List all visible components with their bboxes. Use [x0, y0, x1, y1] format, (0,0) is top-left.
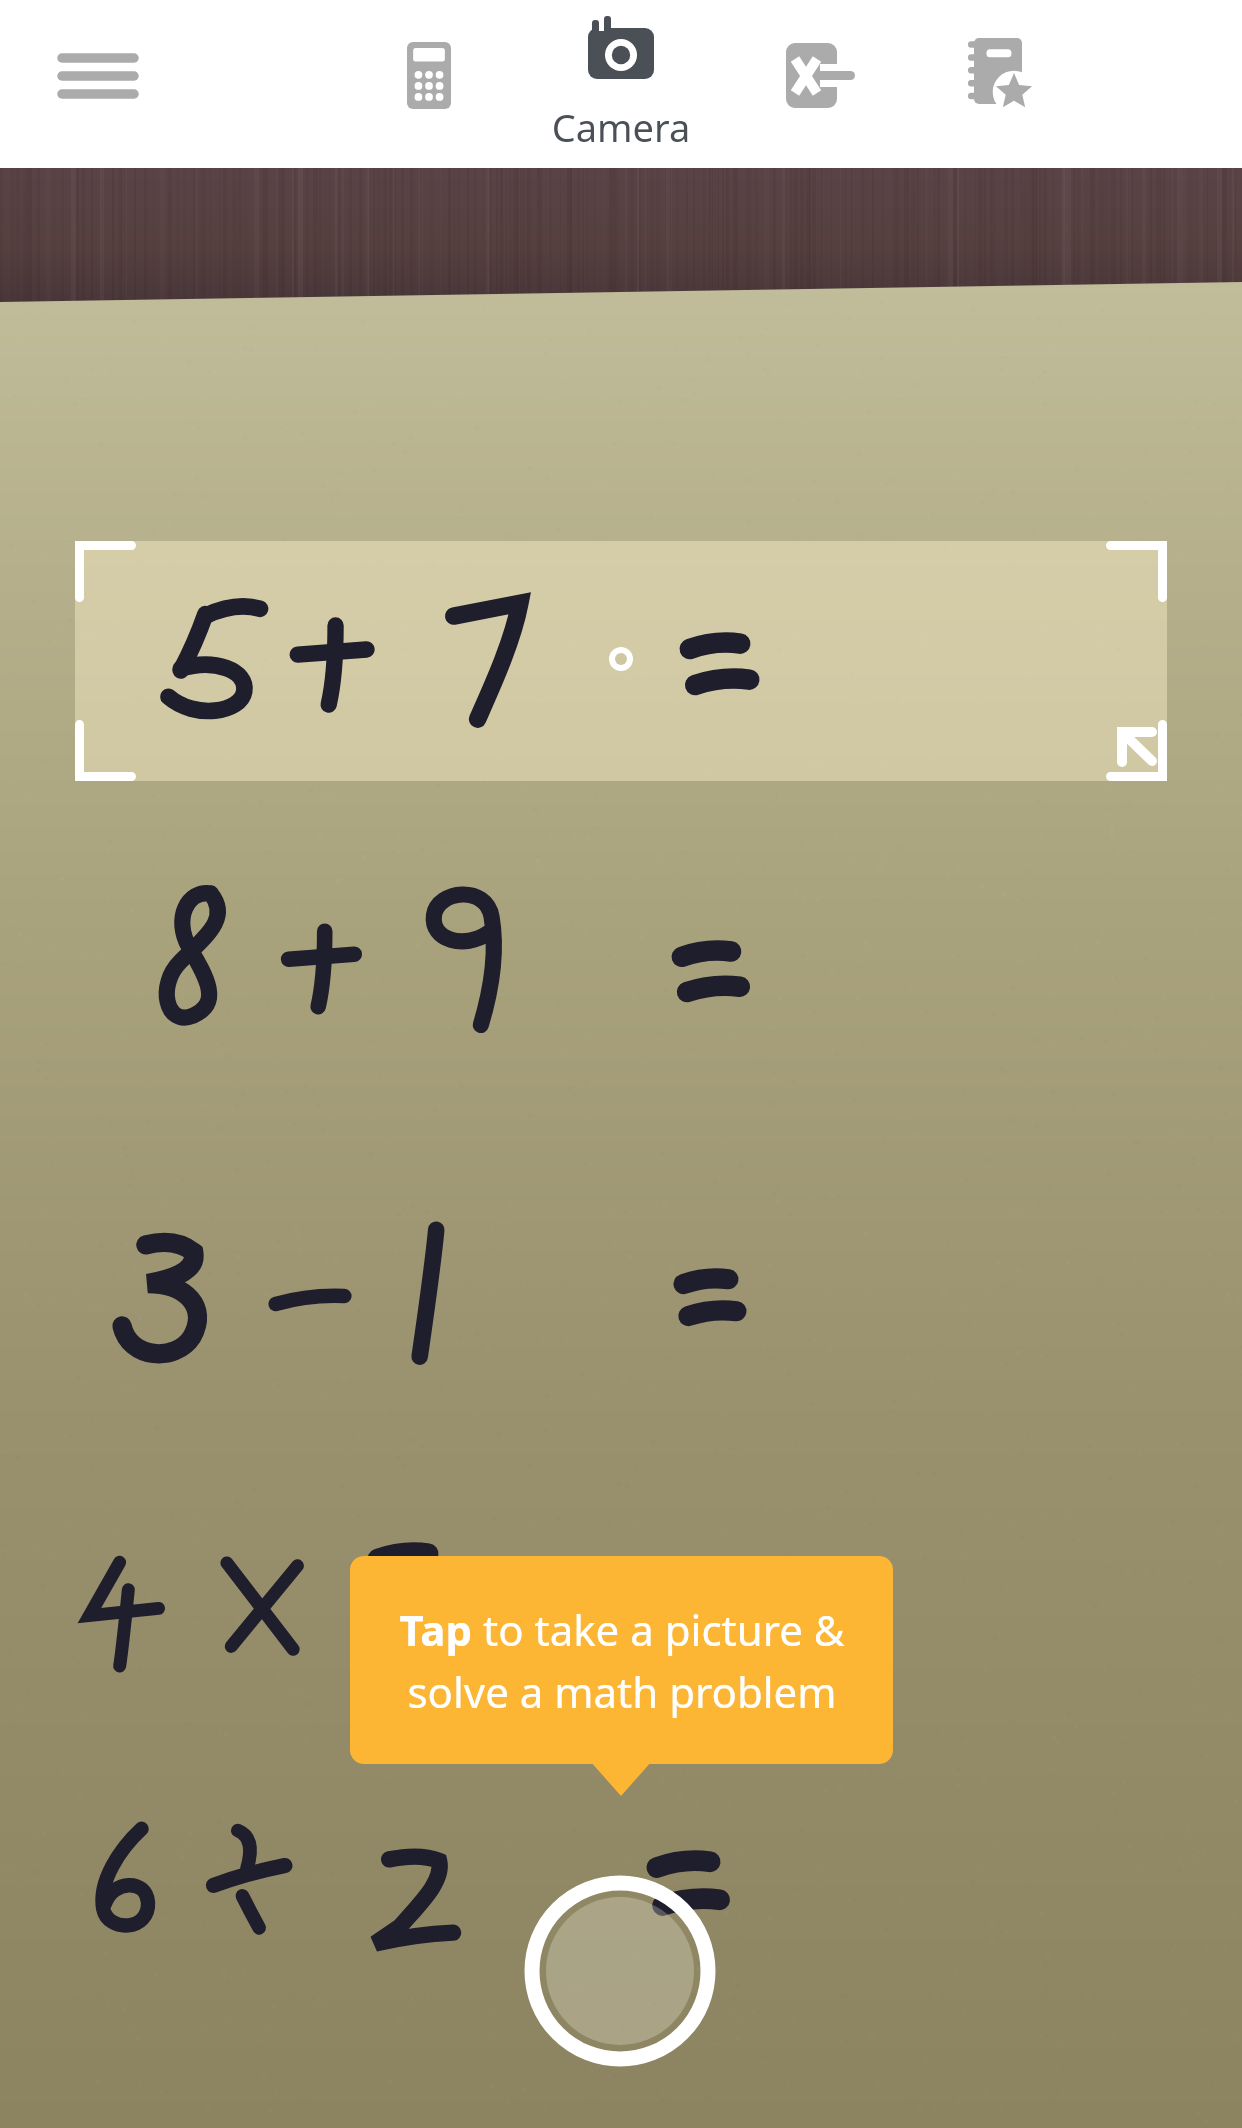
button[interactable]: Solve for x [750, 10, 880, 160]
button[interactable]: Resize scan area [1092, 706, 1166, 780]
staticText: Camera [540, 101, 702, 153]
button[interactable]: Favourites [940, 10, 1080, 160]
button[interactable]: Camera [545, 8, 700, 163]
button[interactable]: Take picture [526, 1876, 716, 2066]
button[interactable]: Menu [20, 10, 180, 160]
button[interactable]: Tap to take a picture & solve a math pro… [350, 1556, 893, 1764]
staticText: Tap to take a picture & solve a math pro… [399, 1601, 845, 1720]
button[interactable]: Calculator [360, 10, 500, 160]
